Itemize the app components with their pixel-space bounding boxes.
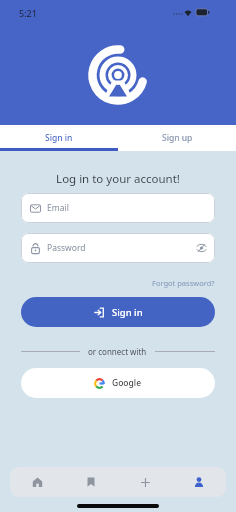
button[interactable]: Sign up bbox=[118, 125, 236, 151]
staticText: 5:21 bbox=[19, 7, 37, 19]
button[interactable]: Google bbox=[21, 368, 215, 398]
button[interactable] bbox=[172, 467, 226, 497]
button[interactable]: Sign in bbox=[21, 297, 215, 327]
staticText: or connect with bbox=[88, 346, 147, 357]
staticText: Google bbox=[112, 377, 142, 389]
button[interactable]: Sign in bbox=[0, 125, 118, 151]
button[interactable] bbox=[64, 467, 118, 497]
staticText: Password bbox=[47, 242, 189, 254]
staticText: Email bbox=[47, 202, 69, 214]
staticText: Sign in bbox=[45, 132, 73, 144]
staticText: Sign up bbox=[162, 132, 193, 144]
button[interactable]: Forgot password? bbox=[152, 278, 215, 288]
staticText: Log in to your account! bbox=[21, 171, 215, 187]
button[interactable] bbox=[118, 467, 172, 497]
staticText: Sign in bbox=[112, 306, 143, 319]
button[interactable]: Email bbox=[21, 193, 215, 223]
button[interactable] bbox=[189, 236, 213, 260]
button[interactable]: Password bbox=[21, 233, 215, 263]
button[interactable] bbox=[10, 467, 64, 497]
